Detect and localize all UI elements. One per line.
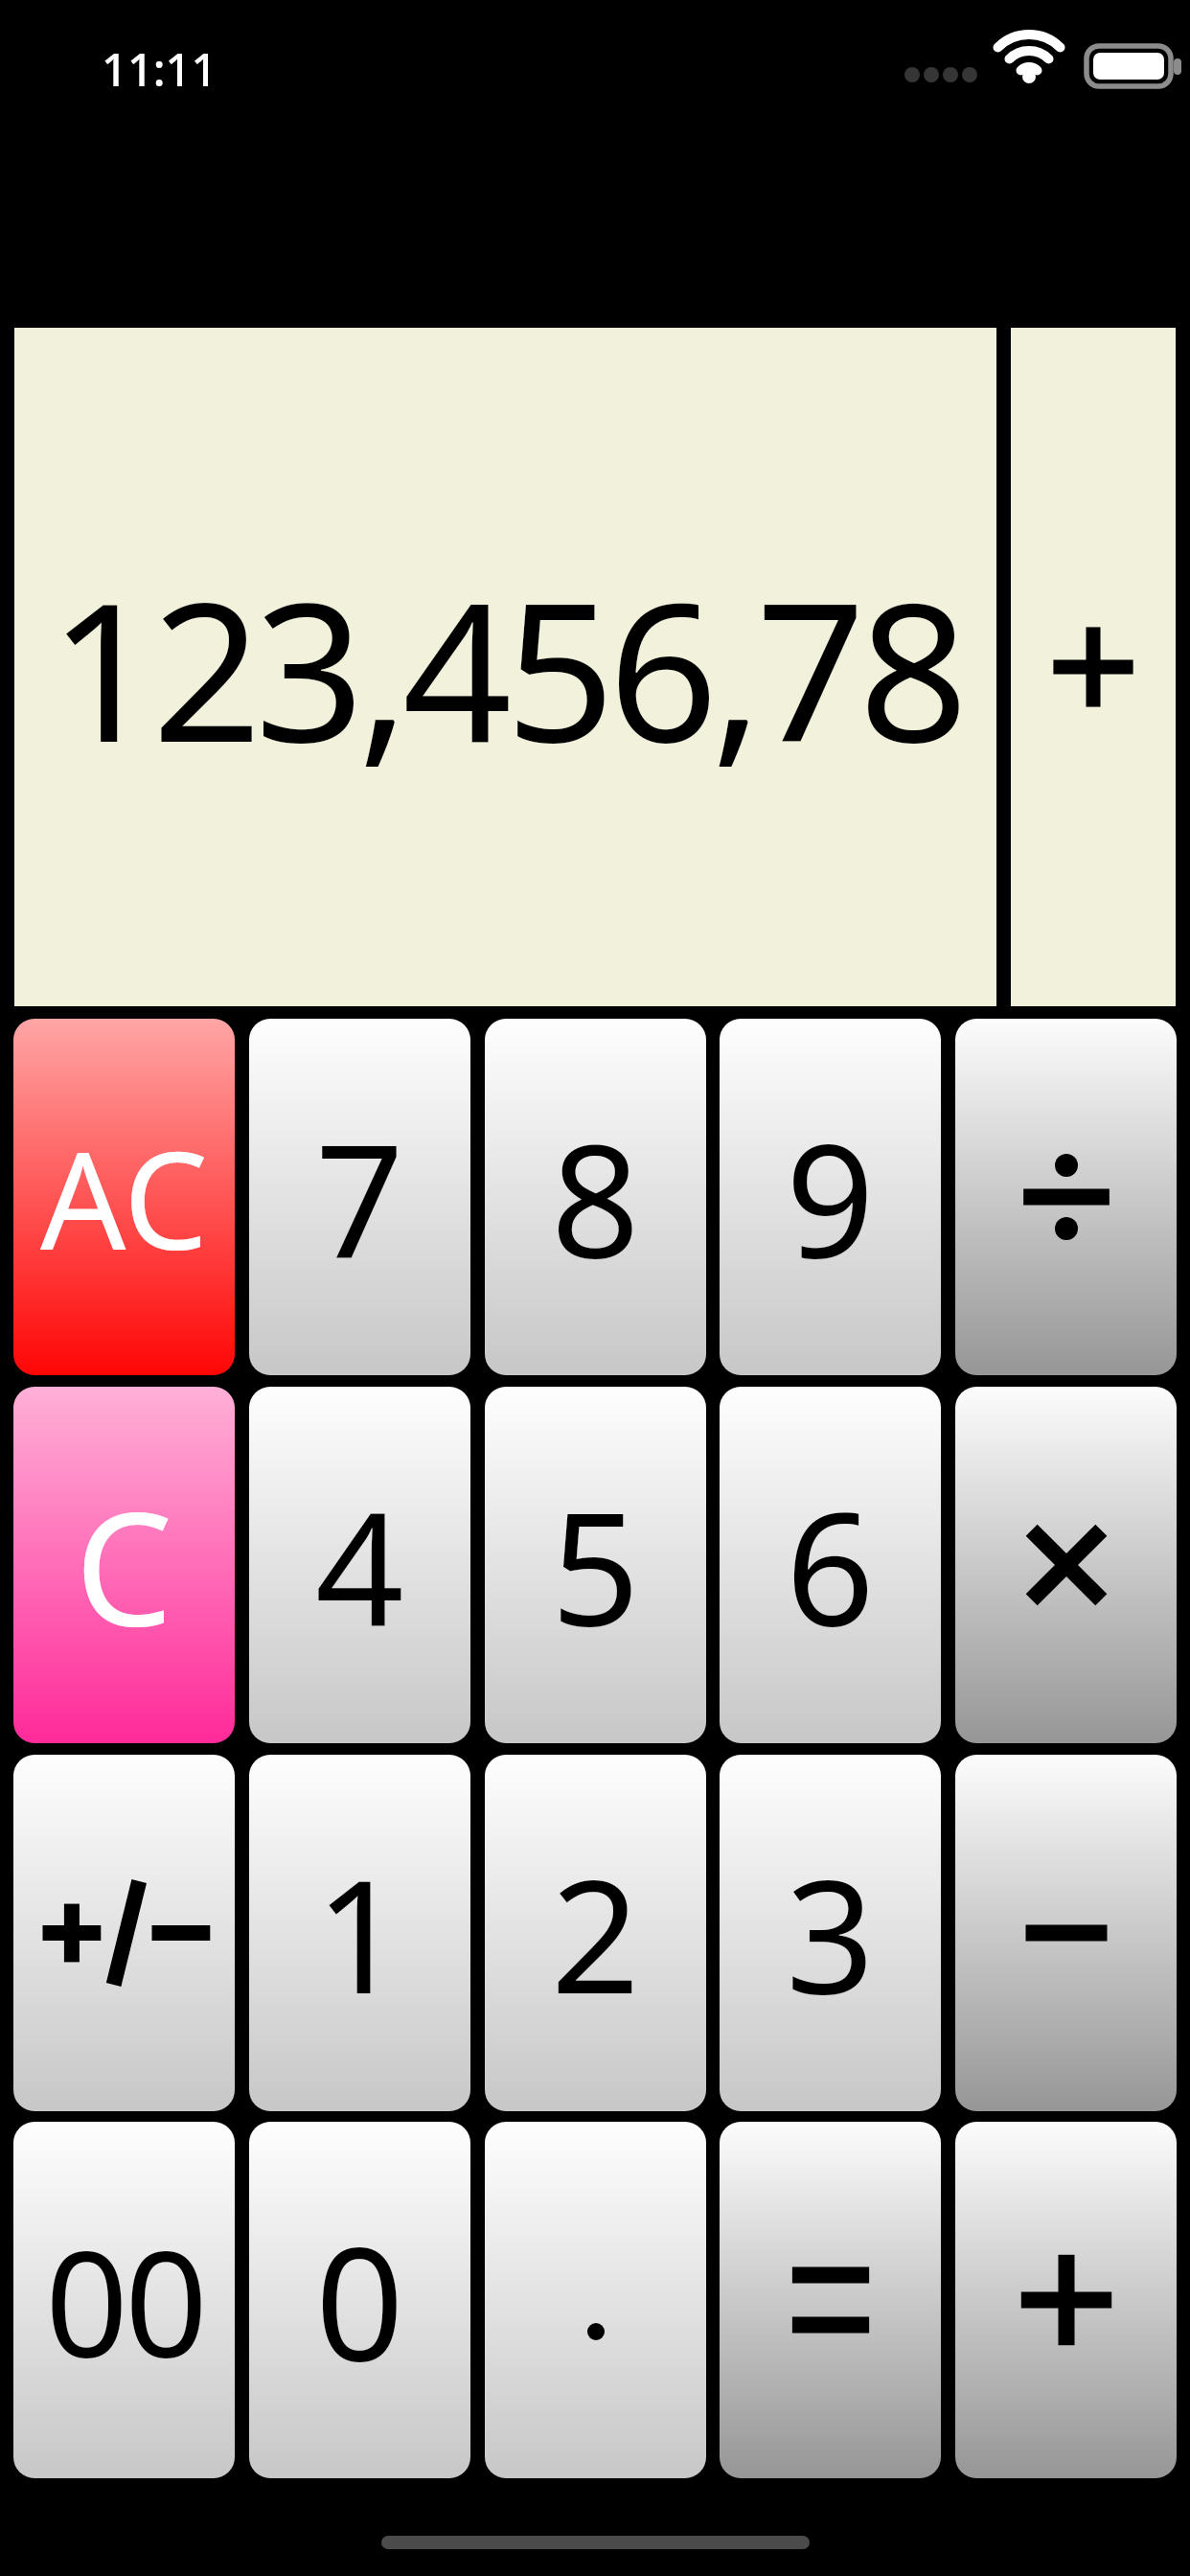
staticText: 0 [315,2195,404,2406]
button[interactable]: 6 [720,1387,941,1743]
staticText: 2 [551,1828,640,2039]
staticText: 6 [786,1460,875,1671]
staticText: C [75,1460,173,1671]
button[interactable]: × [955,1387,1177,1743]
button[interactable]: 3 [720,1755,941,2111]
staticText: 1 [315,1828,404,2039]
staticText: 5 [551,1460,640,1671]
button[interactable]: 1 [249,1755,470,2111]
button[interactable]: C [13,1387,235,1743]
staticText: 8 [551,1092,640,1303]
button[interactable]: 0 [249,2122,470,2478]
button[interactable]: 9 [720,1019,941,1375]
button[interactable]: 7 [249,1019,470,1375]
staticText: 123,456,789,000 [16,537,995,797]
staticText: 11:11 [102,38,217,100]
button[interactable]: ÷ [955,1019,1177,1375]
staticText: 00 [45,2201,204,2400]
button[interactable]: . [485,2122,706,2478]
button[interactable]: 4 [249,1387,470,1743]
staticText: 7 [315,1092,404,1303]
button[interactable]: +/- [13,1755,235,2111]
button[interactable]: 5 [485,1387,706,1743]
button[interactable]: Current operator plus [1011,328,1176,1006]
button[interactable]: 123,456,789,000 [14,328,996,1006]
staticText: 9 [786,1092,875,1303]
staticText: AC [40,1106,209,1289]
button[interactable]: 2 [485,1755,706,2111]
button[interactable]: = [720,2122,941,2478]
button[interactable]: 00 [13,2122,235,2478]
button[interactable]: - [955,1755,1177,2111]
button[interactable]: AC [13,1019,235,1375]
button[interactable]: + [955,2122,1177,2478]
staticText: 4 [315,1460,404,1671]
staticText: 3 [786,1828,875,2039]
button[interactable]: 8 [485,1019,706,1375]
